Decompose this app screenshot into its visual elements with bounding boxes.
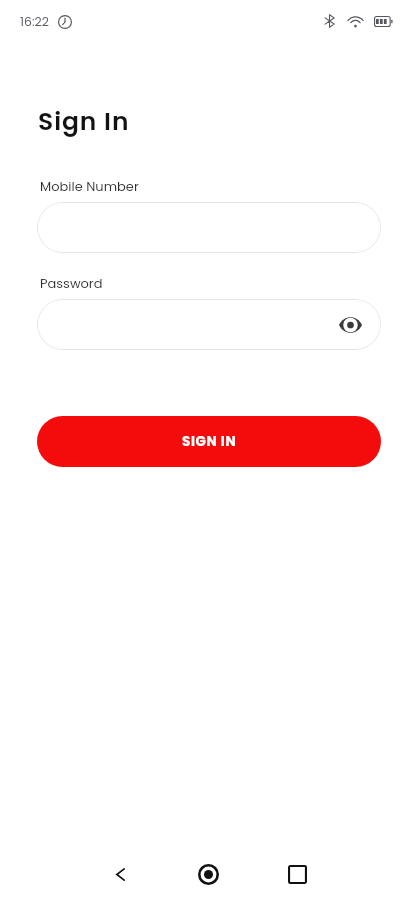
button[interactable]: Recents [275,852,319,896]
button[interactable]: Show password [334,309,366,341]
staticText: 16:22 [20,13,49,30]
button[interactable]: SIGN IN [37,416,381,467]
staticText: Mobile Number [40,177,139,195]
button[interactable] [37,202,381,253]
button[interactable]: Show password [37,299,381,350]
staticText: Password [40,274,103,292]
staticText: SIGN IN [182,432,237,451]
button[interactable]: Back [98,852,142,896]
staticText: Sign In [38,104,130,139]
button[interactable]: Home [186,852,230,896]
